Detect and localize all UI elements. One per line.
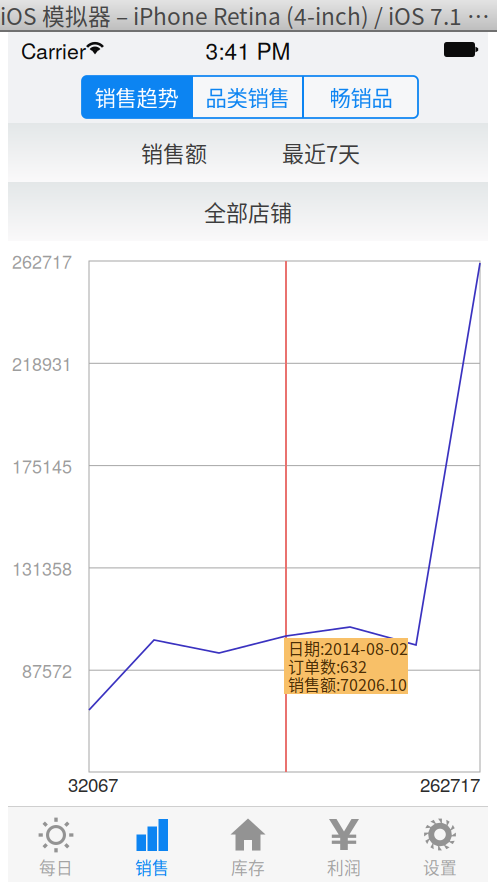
button[interactable]: 每日 (8, 807, 104, 882)
staticText: 262717 (12, 248, 72, 274)
staticText: 3:41 PM (205, 34, 290, 66)
staticText: 每日 (39, 855, 73, 879)
button[interactable]: 最近7天 (246, 123, 396, 182)
button[interactable]: 销售趋势 (82, 76, 191, 118)
staticText: Carrier (21, 35, 86, 65)
staticText: 库存 (231, 855, 265, 879)
staticText: 131358 (12, 555, 72, 581)
staticText: 32067 (68, 771, 118, 797)
staticText: 175145 (12, 453, 72, 478)
staticText: 最近7天 (282, 137, 360, 168)
staticText: 订单数:632 (288, 654, 367, 678)
button[interactable]: 销售额 (99, 123, 249, 182)
button[interactable]: 品类销售 (193, 76, 302, 118)
staticText: 畅销品 (329, 82, 392, 112)
button[interactable]: 利润 (296, 807, 392, 882)
staticText: iOS 模拟器 – iPhone Retina (4-inch) / iOS 7… (0, 0, 497, 31)
button[interactable]: 销售 (104, 807, 200, 882)
button[interactable]: 库存 (200, 807, 296, 882)
staticText: 销售额 (141, 137, 207, 168)
staticText: 销售 (135, 855, 169, 879)
button[interactable]: 畅销品 (304, 76, 418, 118)
button[interactable]: 设置 (392, 807, 488, 882)
staticText: 利润 (327, 855, 361, 879)
staticText: 262717 (420, 771, 480, 797)
staticText: 日期:2014-08-02 (288, 636, 408, 660)
staticText: 销售额:70206.10 (288, 672, 407, 696)
staticText: 设置 (423, 855, 457, 879)
staticText: 218931 (12, 350, 72, 376)
staticText: 全部店铺 (204, 196, 292, 227)
staticText: 品类销售 (205, 82, 289, 112)
staticText: 销售趋势 (94, 82, 178, 112)
button[interactable]: 全部店铺 (8, 182, 488, 241)
staticText: 87572 (22, 657, 72, 683)
